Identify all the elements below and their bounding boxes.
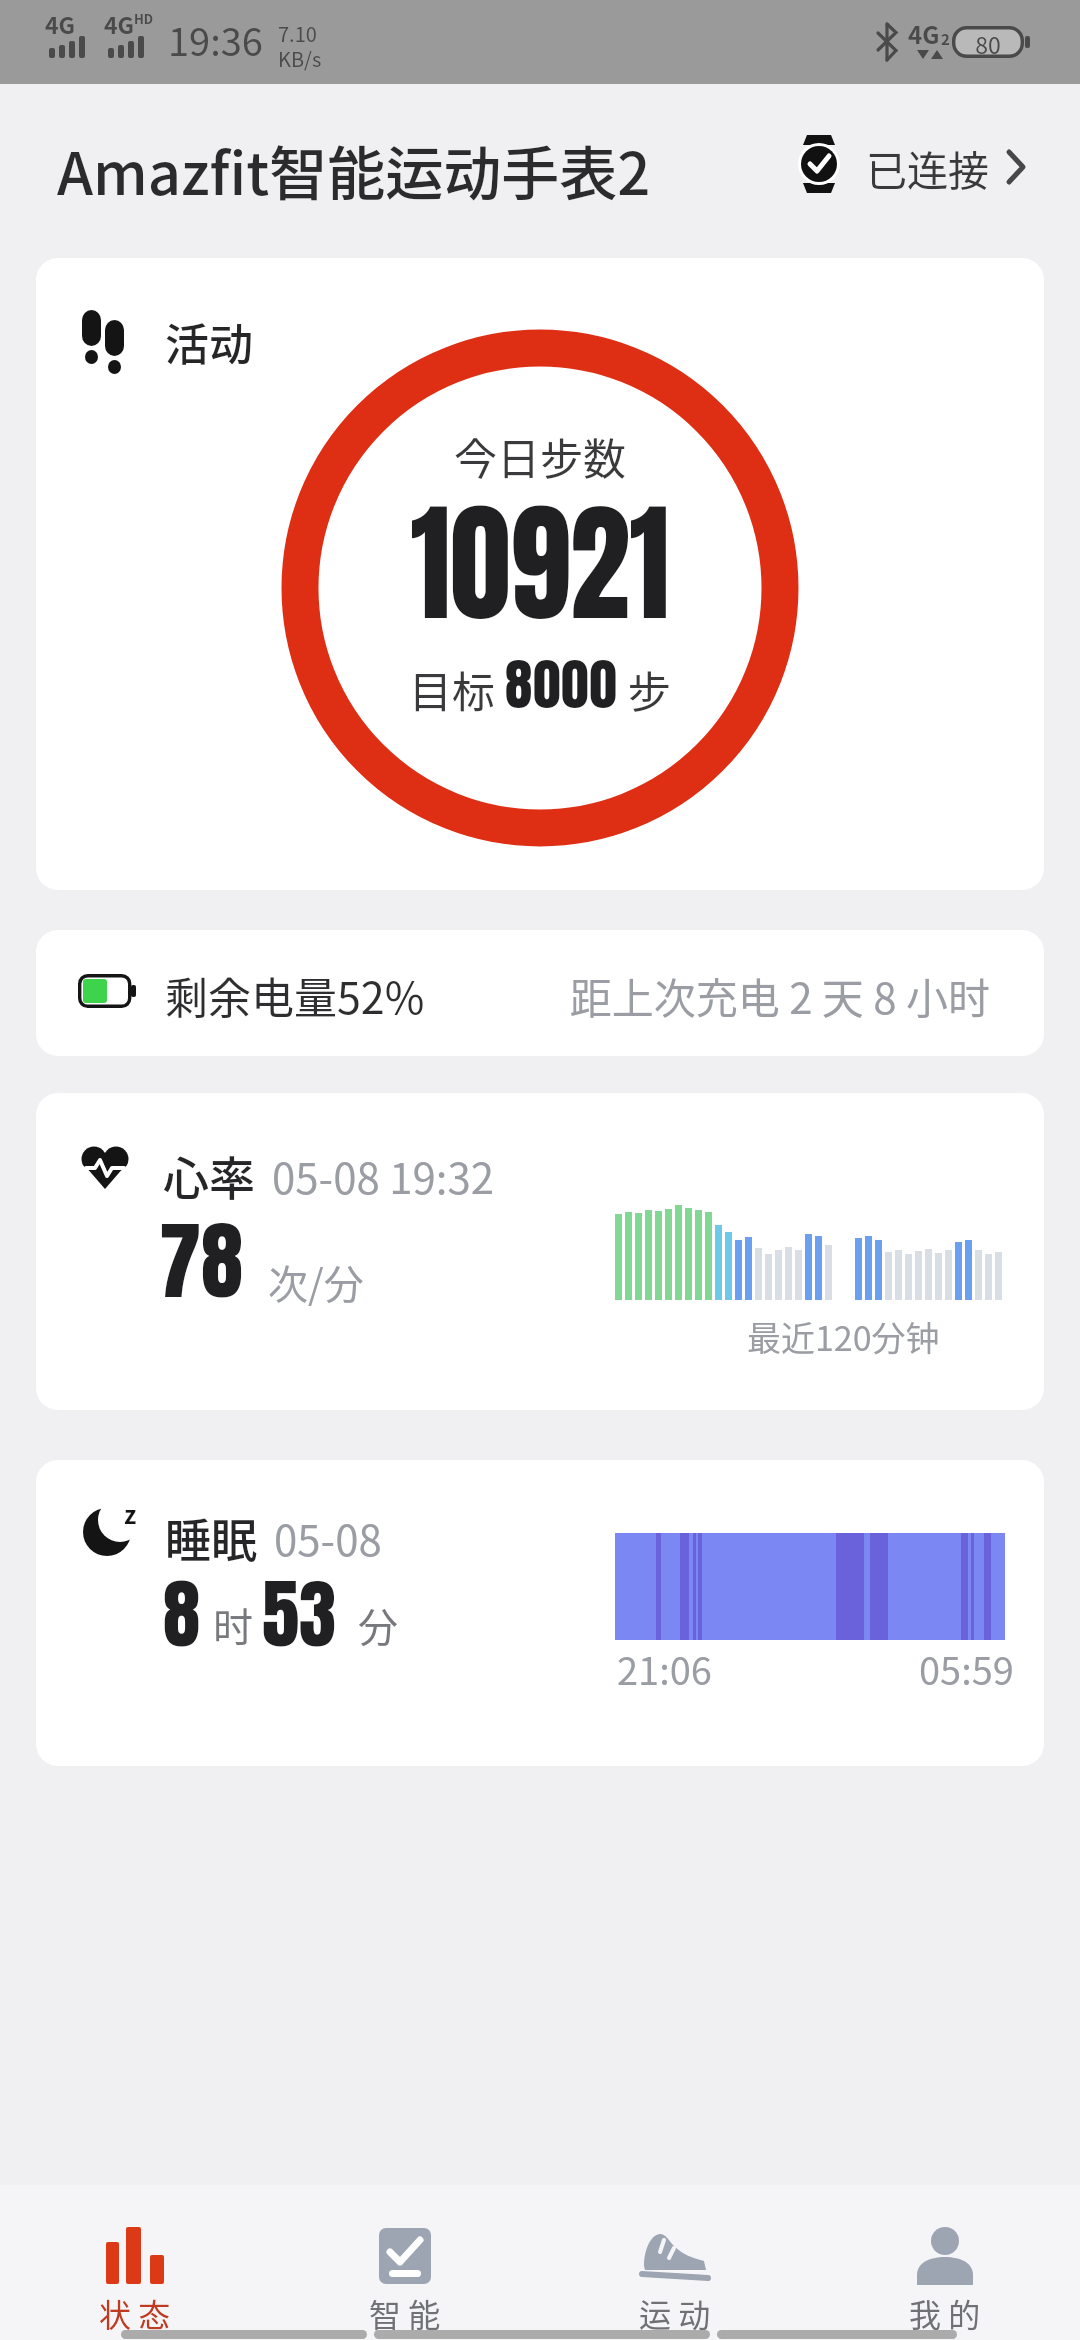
staticText: 05-08 19:32 bbox=[272, 1145, 495, 1206]
staticText: Amazfit智能运动手表2 bbox=[57, 128, 651, 212]
button[interactable]: 智 能 bbox=[270, 2185, 540, 2340]
staticText: 21:06 bbox=[617, 1641, 712, 1696]
staticText: 4G bbox=[908, 16, 940, 51]
staticText: 睡眠 bbox=[165, 1504, 257, 1571]
staticText: 今日步数 bbox=[36, 425, 1044, 487]
staticText: 78 bbox=[159, 1197, 244, 1325]
button[interactable]: 我 的 bbox=[810, 2185, 1080, 2340]
staticText: 05-08 bbox=[274, 1507, 382, 1568]
button[interactable]: 剩余电量52% bbox=[36, 930, 1044, 1056]
staticText: 心率 bbox=[163, 1142, 255, 1209]
staticText: 距上次充电 2 天 8 小时 bbox=[36, 965, 990, 1026]
staticText: 步 bbox=[618, 658, 671, 720]
staticText: HD bbox=[134, 9, 154, 28]
staticText: 次/分 bbox=[268, 1253, 364, 1311]
staticText: 19:36 bbox=[168, 12, 263, 67]
staticText: 80 bbox=[952, 27, 1024, 60]
staticText: z bbox=[124, 1496, 137, 1531]
staticText: 10921 bbox=[71, 465, 1009, 661]
staticText: 8000 bbox=[505, 643, 618, 726]
staticText: 7.10 bbox=[278, 19, 317, 48]
staticText: 运 动 bbox=[639, 2290, 711, 2336]
staticText: 8 bbox=[163, 1558, 201, 1671]
staticText: KB/s bbox=[278, 44, 322, 73]
button[interactable]: 状 态 bbox=[0, 2185, 270, 2340]
staticText: 53 bbox=[262, 1558, 337, 1671]
staticText: 4G bbox=[104, 7, 135, 40]
button[interactable]: 已连接 bbox=[780, 124, 1044, 208]
button[interactable]: 心率 bbox=[36, 1093, 1044, 1410]
staticText: 状 态 bbox=[99, 2290, 171, 2336]
staticText: 分 bbox=[358, 1596, 398, 1654]
staticText: 2 bbox=[941, 28, 950, 50]
staticText: 目标 bbox=[409, 658, 505, 720]
staticText: 4G bbox=[45, 7, 76, 40]
staticText: 活动 bbox=[165, 310, 253, 374]
staticText: 智 能 bbox=[369, 2290, 441, 2336]
staticText: 最近120分钟 bbox=[747, 1312, 940, 1361]
staticText: 剩余电量52% bbox=[165, 964, 425, 1026]
staticText: 已连接 bbox=[866, 138, 989, 197]
button[interactable]: 活动 bbox=[36, 258, 1044, 890]
staticText: 05:59 bbox=[919, 1641, 1014, 1696]
staticText: 我 的 bbox=[909, 2290, 981, 2336]
button[interactable]: 运 动 bbox=[540, 2185, 810, 2340]
button[interactable]: z bbox=[36, 1460, 1044, 1766]
staticText: 时 bbox=[213, 1596, 253, 1654]
